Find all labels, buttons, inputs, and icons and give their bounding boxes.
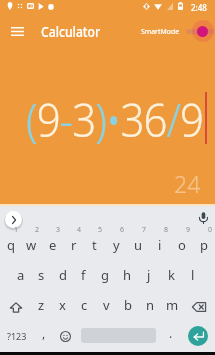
button[interactable]: t: [84, 231, 105, 262]
staticText: h: [123, 266, 132, 284]
staticText: c: [81, 296, 88, 314]
button[interactable]: d: [52, 262, 73, 292]
button[interactable]: m: [161, 292, 183, 322]
button[interactable]: ?123: [2, 322, 32, 352]
staticText: l: [191, 266, 195, 284]
button[interactable]: s: [31, 262, 52, 292]
button[interactable]: u: [127, 231, 149, 262]
staticText: b: [124, 296, 132, 314]
button[interactable]: Shift: [0, 292, 31, 322]
staticText: m: [166, 296, 179, 314]
staticText: k: [168, 266, 175, 284]
button[interactable]: v: [95, 292, 117, 322]
staticText: ?123: [7, 330, 27, 342]
staticText: v: [103, 296, 110, 314]
button[interactable]: b: [117, 292, 139, 322]
staticText: t: [92, 236, 97, 254]
staticText: o: [178, 236, 186, 254]
staticText: d: [59, 266, 67, 284]
staticText: SmartMode: [141, 26, 180, 36]
staticText: f: [81, 266, 86, 284]
button[interactable]: Open navigation drawer: [6, 20, 29, 43]
staticText: r: [71, 236, 77, 254]
button[interactable]: SmartMode: [141, 23, 215, 39]
staticText: 3: [56, 225, 61, 235]
staticText: Calculator: [41, 22, 100, 41]
staticText: 0: [208, 225, 213, 235]
staticText: 7: [142, 225, 147, 235]
button[interactable]: e: [42, 231, 63, 262]
button[interactable]: q: [0, 231, 21, 262]
button[interactable]: Emoji: [55, 322, 75, 352]
button[interactable]: k: [160, 262, 182, 292]
button[interactable]: g: [94, 262, 116, 292]
button[interactable]: n: [139, 292, 161, 322]
button[interactable]: a: [10, 262, 31, 292]
staticText: 5: [98, 225, 103, 235]
button[interactable]: z: [31, 292, 52, 322]
staticText: 8: [164, 225, 169, 235]
staticText: 4: [77, 225, 82, 235]
staticText: z: [38, 296, 45, 314]
staticText: ,: [42, 325, 46, 341]
button[interactable]: Enter: [188, 326, 208, 346]
button[interactable]: o: [171, 231, 193, 262]
button[interactable]: x: [52, 292, 73, 322]
button[interactable]: y: [105, 231, 127, 262]
staticText: j: [147, 266, 151, 284]
staticText: 2: [35, 225, 40, 235]
staticText: 6: [120, 225, 125, 235]
button[interactable]: ,: [34, 322, 54, 352]
button[interactable]: p: [193, 231, 215, 262]
staticText: x: [59, 296, 66, 314]
staticText: a: [17, 266, 25, 284]
button[interactable]: r: [63, 231, 84, 262]
button[interactable]: f: [73, 262, 94, 292]
staticText: s: [38, 266, 45, 284]
staticText: g: [101, 266, 109, 284]
staticText: 2:48: [191, 2, 207, 13]
button[interactable]: Show more suggestions: [5, 211, 22, 228]
button[interactable]: l: [182, 262, 204, 292]
staticText: .: [169, 325, 173, 341]
staticText: (9-3)•36/9: [26, 89, 204, 150]
button[interactable]: w: [21, 231, 42, 262]
button[interactable]: c: [73, 292, 95, 322]
button[interactable]: Voice input: [196, 211, 210, 225]
button[interactable]: .: [161, 322, 181, 352]
staticText: 9: [186, 225, 191, 235]
staticText: 1: [14, 225, 19, 235]
button[interactable]: j: [138, 262, 160, 292]
staticText: i: [158, 236, 162, 254]
staticText: u: [134, 236, 143, 254]
staticText: n: [146, 296, 155, 314]
button[interactable]: Backspace: [183, 292, 215, 322]
button[interactable]: i: [149, 231, 171, 262]
staticText: q: [7, 236, 15, 254]
staticText: y: [113, 236, 120, 254]
button[interactable]: h: [116, 262, 138, 292]
staticText: e: [49, 236, 57, 254]
staticText: 24: [174, 168, 201, 199]
staticText: p: [200, 236, 208, 254]
staticText: w: [26, 236, 37, 254]
